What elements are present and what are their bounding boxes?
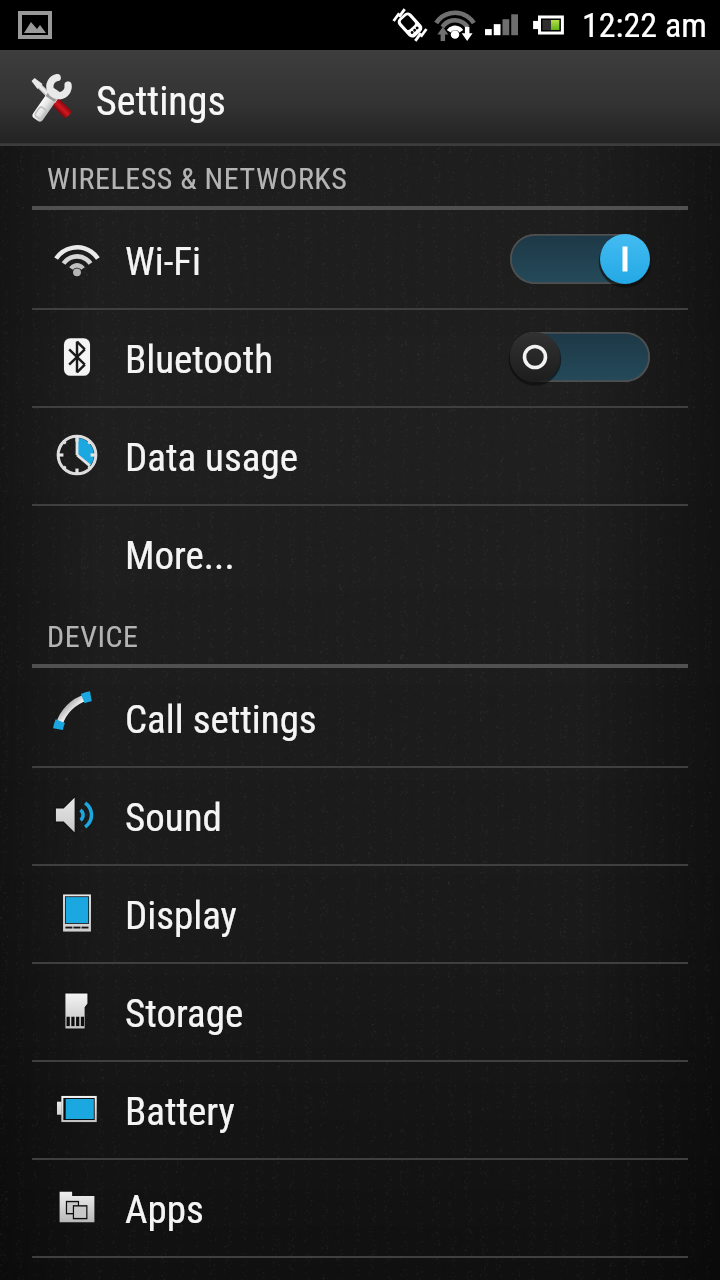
button[interactable]: More...	[0, 504, 720, 602]
staticText: Data usage	[125, 435, 298, 481]
button[interactable]: Battery	[0, 1060, 720, 1158]
button[interactable]: Wi-Fi	[0, 210, 720, 308]
staticText: Storage	[125, 991, 244, 1037]
button[interactable]: Bluetooth	[0, 308, 720, 406]
button[interactable]: Data usage	[0, 406, 720, 504]
button[interactable]: Call settings	[0, 668, 720, 766]
staticText: Battery	[125, 1089, 235, 1135]
staticText: Settings	[96, 78, 226, 125]
other: Settings	[20, 67, 82, 129]
staticText: Wi-Fi	[125, 239, 202, 285]
button[interactable]: Switch off	[510, 332, 650, 382]
staticText: Display	[125, 893, 237, 939]
staticText: Bluetooth	[125, 337, 274, 383]
button[interactable]: Display	[0, 864, 720, 962]
button[interactable]: Storage	[0, 962, 720, 1060]
staticText: WIRELESS & NETWORKS	[47, 161, 348, 196]
staticText: DEVICE	[47, 619, 139, 654]
staticText: Call settings	[125, 697, 317, 743]
button[interactable]: Sound	[0, 766, 720, 864]
staticText: Apps	[125, 1187, 204, 1233]
staticText: 12:22 am	[582, 5, 707, 45]
button[interactable]: Switch on	[510, 234, 650, 284]
staticText: More...	[125, 533, 235, 579]
staticText: Sound	[125, 795, 222, 841]
button[interactable]: Apps	[0, 1158, 720, 1256]
